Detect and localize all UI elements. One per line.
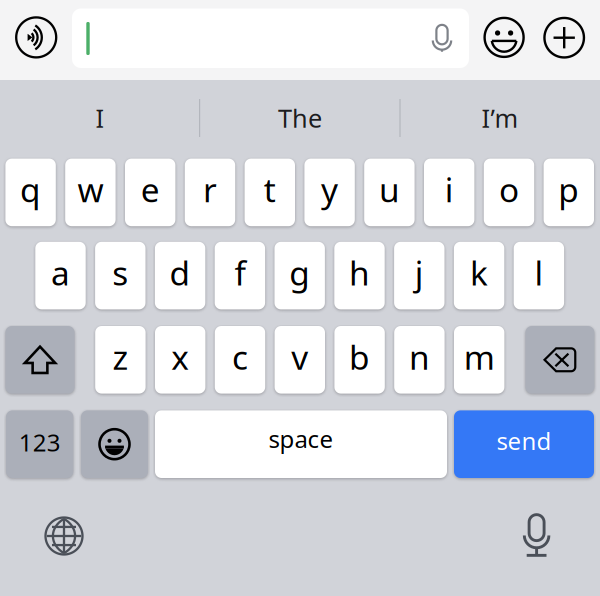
- staticText: o: [499, 167, 519, 212]
- staticText: p: [558, 167, 579, 212]
- button[interactable]: u: [0, 0, 600, 596]
- button[interactable]: m: [0, 0, 600, 596]
- button[interactable]: z: [0, 0, 600, 596]
- button[interactable]: Dictation: [508, 506, 566, 564]
- button[interactable]: i: [0, 0, 600, 596]
- staticText: x: [171, 335, 189, 379]
- staticText: i: [445, 167, 454, 212]
- button[interactable]: g: [0, 0, 600, 596]
- button[interactable]: a: [0, 0, 600, 596]
- staticText: send: [496, 425, 551, 457]
- staticText: h: [349, 250, 370, 295]
- staticText: space: [268, 423, 333, 455]
- staticText: d: [170, 250, 191, 295]
- staticText: z: [112, 335, 128, 379]
- staticText: 123: [19, 426, 61, 458]
- staticText: j: [415, 250, 424, 295]
- button[interactable]: Next keyboard: [35, 507, 93, 565]
- button[interactable]: d: [0, 0, 600, 596]
- button[interactable]: Audio message: [11, 12, 61, 62]
- staticText: s: [112, 250, 128, 295]
- button[interactable]: send: [0, 0, 600, 596]
- button[interactable]: y: [0, 0, 600, 596]
- button[interactable]: f: [0, 0, 600, 596]
- staticText: c: [232, 335, 248, 379]
- staticText: b: [349, 335, 370, 379]
- button[interactable]: r: [0, 0, 600, 596]
- button[interactable]: e: [0, 0, 600, 596]
- staticText: q: [20, 167, 41, 212]
- staticText: e: [141, 167, 160, 212]
- button[interactable]: Delete: [0, 0, 600, 596]
- staticText: l: [534, 250, 543, 295]
- button[interactable]: o: [0, 0, 600, 596]
- button[interactable]: v: [0, 0, 600, 596]
- button[interactable]: p: [0, 0, 600, 596]
- button[interactable]: l: [0, 0, 600, 596]
- button[interactable]: I: [2, 97, 198, 139]
- button[interactable]: Shift: [0, 0, 600, 596]
- staticText: t: [264, 167, 276, 212]
- staticText: n: [409, 335, 430, 379]
- button[interactable]: w: [0, 0, 600, 596]
- button[interactable]: b: [0, 0, 600, 596]
- button[interactable]: k: [0, 0, 600, 596]
- button[interactable]: space: [0, 0, 600, 596]
- button[interactable]: x: [0, 0, 600, 596]
- button[interactable]: q: [0, 0, 600, 596]
- staticText: The: [278, 101, 322, 135]
- button[interactable]: 123: [0, 0, 600, 596]
- staticText: g: [289, 250, 310, 295]
- button[interactable]: I’m: [402, 97, 598, 139]
- button[interactable]: n: [0, 0, 600, 596]
- button[interactable]: The: [202, 97, 398, 139]
- staticText: y: [321, 167, 338, 212]
- staticText: u: [379, 167, 400, 212]
- staticText: v: [291, 335, 308, 379]
- staticText: w: [77, 167, 103, 212]
- staticText: m: [464, 335, 495, 379]
- staticText: a: [51, 250, 70, 295]
- button[interactable]: h: [0, 0, 600, 596]
- staticText: I’m: [481, 101, 518, 135]
- button[interactable]: s: [0, 0, 600, 596]
- button[interactable]: t: [0, 0, 600, 596]
- staticText: k: [470, 250, 488, 295]
- button[interactable]: Emoji: [479, 12, 529, 62]
- button[interactable]: j: [0, 0, 600, 596]
- button[interactable]: Dictate: [420, 14, 464, 62]
- staticText: r: [203, 167, 217, 212]
- staticText: f: [234, 250, 245, 295]
- button[interactable]: c: [0, 0, 600, 596]
- button[interactable]: More: [539, 13, 589, 63]
- button[interactable]: Emoji keyboard: [0, 0, 600, 596]
- staticText: I: [95, 101, 104, 135]
